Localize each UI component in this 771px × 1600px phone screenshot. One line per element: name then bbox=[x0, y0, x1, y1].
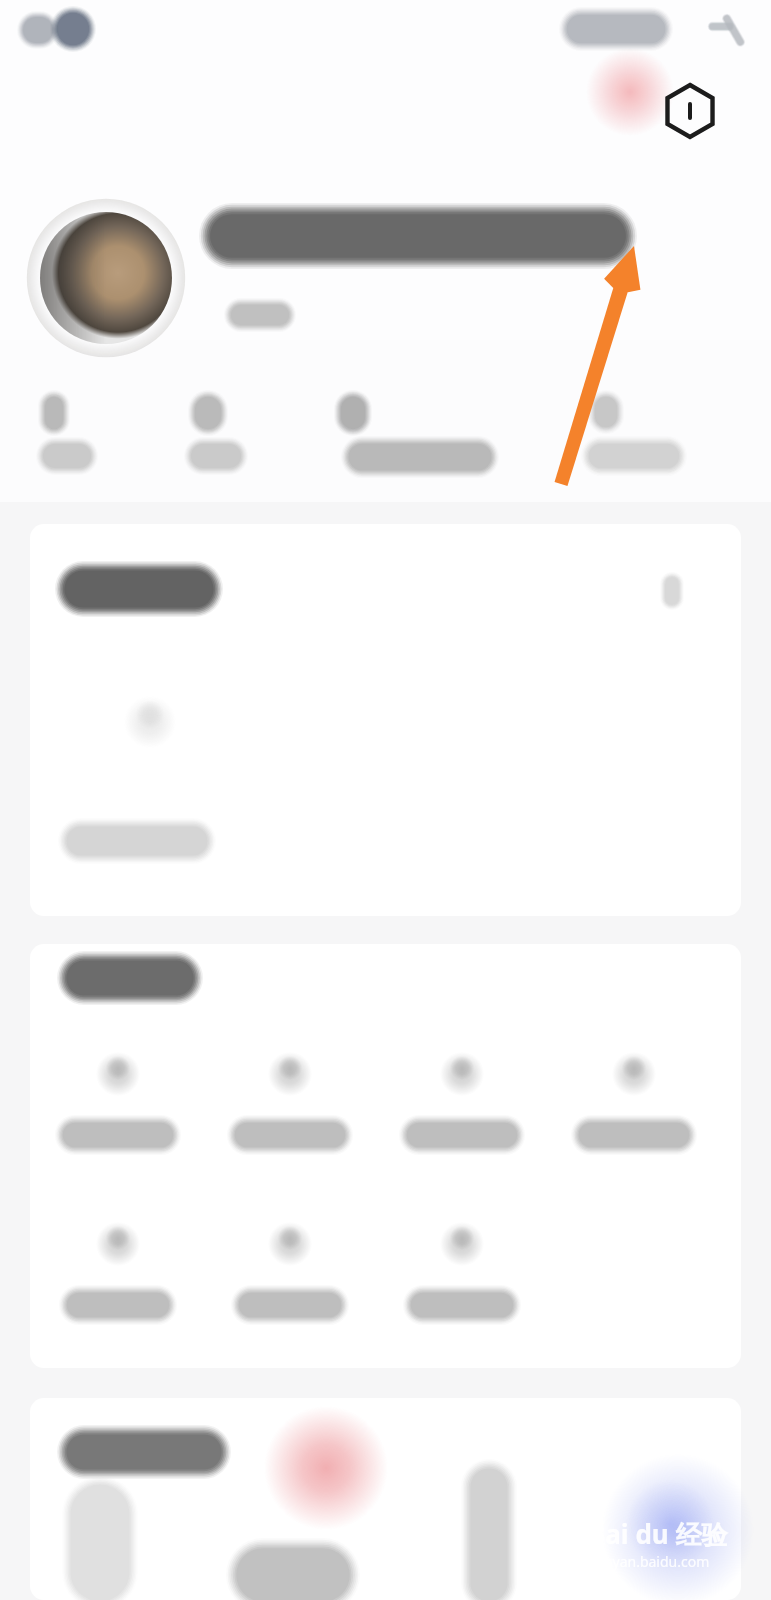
button[interactable]: Tool 4 bbox=[556, 1040, 712, 1164]
staticText: Bai du 经验 bbox=[588, 1516, 728, 1552]
button[interactable]: Profile photo bbox=[40, 212, 172, 344]
button[interactable]: Tool 3 bbox=[384, 1040, 540, 1164]
button[interactable]: Badge bbox=[664, 85, 716, 137]
button[interactable]: Stat 1 bbox=[30, 386, 160, 480]
button[interactable]: Tool 6 bbox=[212, 1210, 368, 1334]
button[interactable]: User name bbox=[200, 206, 640, 336]
button[interactable]: Recommendations bbox=[30, 1398, 741, 1600]
staticText: jingyan.baidu.com bbox=[588, 1552, 710, 1571]
button[interactable]: Stat 2 bbox=[176, 386, 316, 480]
button[interactable]: Tool 7 bbox=[384, 1210, 540, 1334]
button[interactable]: Tool 2 bbox=[212, 1040, 368, 1164]
button[interactable]: Stat 3 bbox=[330, 386, 520, 480]
button[interactable]: Tool 1 bbox=[40, 1040, 196, 1164]
button[interactable]: Stat 4 bbox=[560, 386, 710, 480]
button[interactable]: Orders bbox=[30, 524, 741, 916]
button[interactable]: Tool 5 bbox=[40, 1210, 196, 1334]
